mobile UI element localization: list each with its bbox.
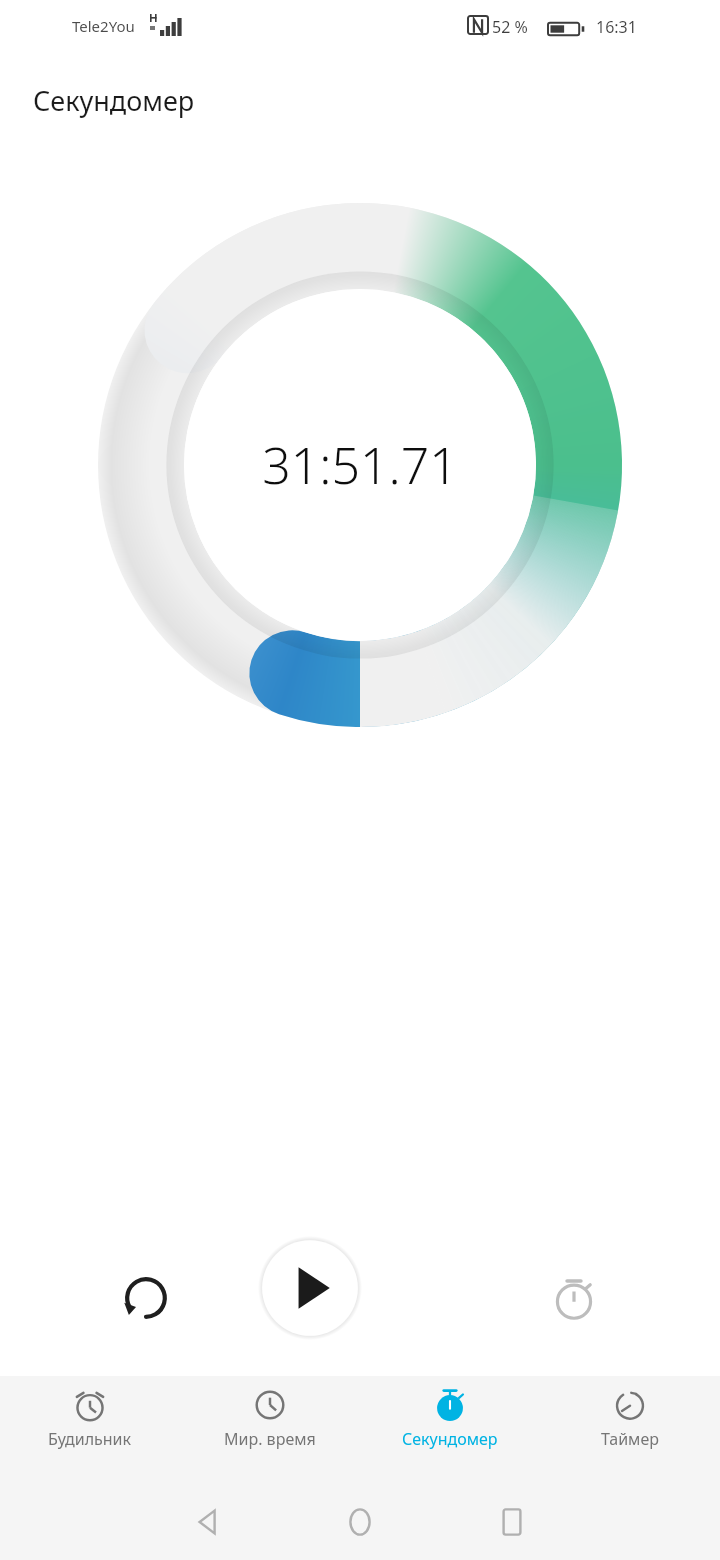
button[interactable]: Секундомер [360,1376,540,1484]
staticText: Секундомер [33,82,195,119]
staticText: Tele2You [72,16,135,36]
button[interactable]: Будильник [0,1376,180,1484]
staticText: 16:31 [596,16,637,38]
button[interactable]: Back [160,1492,256,1552]
staticText: 52 % [492,16,528,38]
staticText: 31:51.71 [262,431,458,499]
staticText: Таймер [601,1428,659,1450]
button[interactable]: Recents [464,1492,560,1552]
button[interactable]: Home [312,1492,408,1552]
staticText: Будильник [48,1428,132,1450]
staticText: Мир. время [224,1428,316,1450]
staticText: Секундомер [402,1428,498,1450]
button[interactable]: Reset [100,1252,192,1344]
button[interactable]: Мир. время [180,1376,360,1484]
button[interactable]: Lap [528,1252,620,1344]
button[interactable]: Start [258,1236,362,1340]
button[interactable]: Таймер [540,1376,720,1484]
